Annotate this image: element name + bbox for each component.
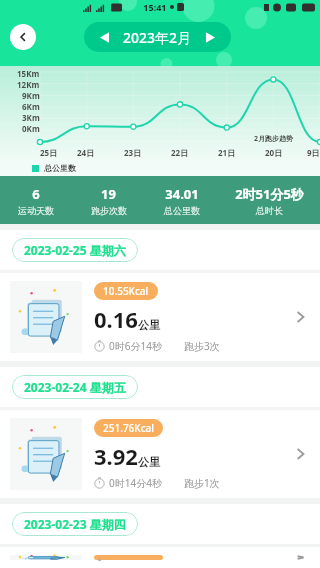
staticText: 0Km (22, 123, 40, 134)
button[interactable]: 2023-02-23 星期四 (12, 512, 138, 536)
staticText: 3.92 (94, 441, 138, 471)
button[interactable]: 251.76Kcal (0, 410, 320, 498)
staticText: 10.55Kcal (103, 284, 149, 298)
staticText: 251.76Kcal (103, 421, 154, 435)
staticText: 2月跑步趋势 (254, 134, 294, 144)
button[interactable]: 10.55Kcal (0, 273, 320, 361)
staticText: 3Km (22, 112, 40, 123)
staticText: 跑步3次 (184, 339, 220, 353)
staticText: 跑步1次 (184, 476, 220, 490)
staticText: 15:41 (141, 1, 169, 13)
staticText: 2023年2月 (123, 28, 192, 47)
staticText: 21日 (218, 147, 236, 158)
button[interactable]: 2023-02-24 星期五 (12, 375, 138, 399)
staticText: 34.01 (165, 185, 199, 203)
staticText: 总公里数 (44, 163, 76, 173)
staticText: 23日 (124, 147, 142, 158)
staticText: 9日 (307, 147, 320, 158)
staticText: 公里 (138, 455, 160, 469)
staticText: 24日 (77, 147, 95, 158)
button[interactable]: Previous month (84, 22, 231, 52)
staticText: 20日 (265, 147, 283, 158)
staticText: 运动天数 (18, 205, 54, 216)
other: Next month (204, 31, 217, 44)
staticText: 总公里数 (164, 205, 200, 216)
staticText: 9Km (22, 90, 40, 101)
staticText: 12Km (17, 79, 40, 90)
staticText: 公里 (138, 318, 160, 332)
button[interactable]: 245.12Kcal (0, 547, 320, 568)
staticText: 2023-02-25 星期六 (24, 242, 126, 258)
staticText: 22日 (171, 147, 189, 158)
staticText: 2023-02-24 星期五 (24, 379, 126, 395)
staticText: 跑步次数 (91, 205, 127, 216)
staticText: 6Km (22, 101, 40, 112)
staticText: 6 (32, 185, 40, 203)
staticText: 0时6分14秒 (109, 339, 162, 353)
staticText: 25日 (40, 147, 58, 158)
other: Previous month (98, 31, 111, 44)
staticText: 2时51分5秒 (235, 185, 304, 203)
button[interactable]: Back (10, 24, 36, 50)
staticText: 总时长 (256, 205, 283, 216)
staticText: 19 (101, 185, 116, 203)
staticText: 0时14分4秒 (109, 476, 162, 490)
button[interactable]: 2023-02-25 星期六 (12, 238, 138, 262)
staticText: 0.16 (94, 304, 138, 334)
staticText: 15Km (17, 68, 40, 79)
staticText: 2023-02-23 星期四 (24, 516, 126, 532)
